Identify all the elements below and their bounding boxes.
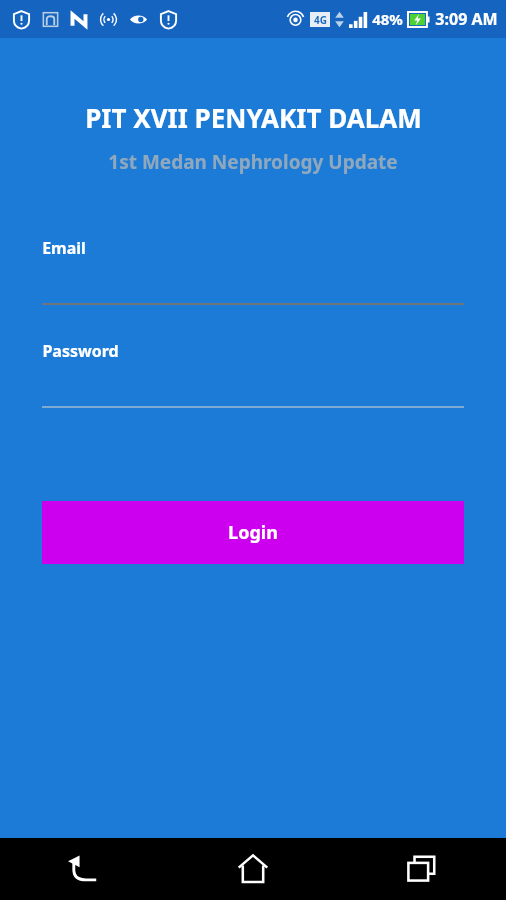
staticText: Password — [42, 340, 119, 362]
staticText: 1st Medan Nephrology Update — [108, 149, 398, 175]
staticText: PIT XVII PENYAKIT DALAM — [85, 100, 422, 135]
button[interactable]: Home — [219, 838, 287, 900]
staticText: Email — [42, 237, 86, 259]
button[interactable]: Email — [42, 237, 464, 305]
button[interactable]: Back — [50, 838, 118, 900]
staticText: 4G — [314, 13, 327, 27]
staticText: 48% — [372, 9, 403, 29]
button[interactable]: Recent apps — [388, 838, 456, 900]
button[interactable]: Login — [42, 501, 464, 564]
button[interactable]: Password — [42, 340, 464, 408]
staticText: Login — [228, 520, 278, 545]
staticText: 3:09 AM — [435, 8, 498, 30]
